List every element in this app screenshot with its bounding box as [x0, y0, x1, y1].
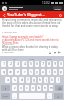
button[interactable]: 6 — [35, 61, 39, 67]
button[interactable]: n — [43, 85, 47, 91]
button[interactable]: 8 — [47, 61, 51, 67]
staticText: 5 — [30, 62, 32, 66]
staticText: 1 — [3, 62, 5, 66]
staticText: https://www.example.com/watch?v=abcdefg&… — [2, 36, 62, 45]
staticText: That — [29, 57, 35, 60]
staticText: 2 — [10, 62, 12, 66]
staticText: 0 — [60, 62, 62, 66]
button[interactable]: Reply — [58, 51, 61, 54]
button[interactable]: Play — [2, 6, 7, 11]
button[interactable]: u — [41, 69, 45, 75]
button[interactable]: j — [44, 77, 48, 83]
button[interactable]: z — [12, 85, 17, 91]
staticText: w — [9, 70, 12, 74]
staticText: l — [58, 78, 59, 82]
staticText: h — [39, 78, 41, 82]
button[interactable]: 4 — [22, 61, 27, 67]
button[interactable]: ?123 — [1, 93, 10, 99]
staticText: c — [26, 86, 28, 90]
button[interactable]: 1 — [1, 61, 6, 67]
staticText: z — [14, 86, 16, 90]
staticText: k — [51, 78, 53, 82]
staticText: 12:02 — [42, 1, 50, 5]
button[interactable]: h — [38, 77, 42, 83]
staticText: , — [14, 94, 15, 98]
staticText: t — [30, 70, 32, 74]
button[interactable]: e — [15, 69, 20, 75]
button[interactable]: ⌫ — [55, 85, 63, 91]
button[interactable]: w — [8, 69, 13, 75]
staticText: u — [42, 70, 44, 74]
staticText: What a great video thanks for sharing it… — [2, 46, 62, 52]
button[interactable]: 7 — [41, 61, 45, 67]
button[interactable]: 2 — [8, 61, 13, 67]
staticText: Please keep comments respectful and rele… — [2, 19, 62, 28]
button[interactable]: Back — [1, 12, 7, 18]
button[interactable]: o — [53, 69, 57, 75]
staticText: YouTube's Biggest... — [7, 12, 45, 17]
button[interactable]: g — [32, 77, 36, 83]
staticText: 8 — [48, 62, 50, 66]
button[interactable]: Like — [48, 51, 51, 54]
staticText: Listen — [54, 7, 62, 10]
button[interactable]: m — [49, 85, 53, 91]
staticText: 7 — [42, 62, 44, 66]
staticText: 6 — [36, 62, 38, 66]
button[interactable]: 5 — [29, 61, 33, 67]
staticText: m — [50, 86, 53, 90]
staticText: x — [20, 86, 22, 90]
staticText: 3 — [17, 62, 19, 66]
staticText: r — [24, 70, 26, 74]
staticText: p — [60, 70, 62, 74]
staticText: ⌫ — [57, 87, 62, 90]
button[interactable]: d — [19, 77, 24, 83]
button[interactable]: a — [5, 77, 10, 83]
staticText: q — [3, 70, 5, 74]
button[interactable]: r — [22, 69, 27, 75]
staticText: ↵ — [57, 95, 60, 98]
button[interactable]: Dislike — [53, 51, 56, 54]
staticText: ⇧ — [4, 87, 7, 90]
button[interactable]: 9 — [53, 61, 57, 67]
staticText: . — [49, 94, 50, 98]
button[interactable]: i — [47, 69, 51, 75]
button[interactable]: . — [47, 93, 52, 99]
button[interactable]: , — [12, 93, 17, 99]
button[interactable]: Listen — [53, 6, 62, 10]
button[interactable]: k — [50, 77, 54, 83]
button[interactable]: b — [37, 85, 41, 91]
staticText: d — [21, 78, 23, 82]
staticText: g — [33, 78, 35, 82]
button[interactable]: c — [25, 85, 29, 91]
staticText: s — [14, 78, 16, 82]
staticText: 3 days ago — [2, 51, 14, 54]
button[interactable]: ⇧ — [1, 85, 10, 91]
button[interactable]: q — [1, 69, 6, 75]
button[interactable]: s — [12, 77, 17, 83]
button[interactable]: ↵ — [54, 93, 63, 99]
button[interactable]: p — [59, 69, 63, 75]
staticText: n — [44, 86, 46, 90]
button[interactable]: l — [56, 77, 60, 83]
button[interactable]: 3 — [15, 61, 20, 67]
staticText: o — [54, 70, 56, 74]
staticText: The — [47, 57, 52, 60]
staticText: j — [46, 78, 47, 82]
staticText: 9 — [54, 62, 56, 66]
staticText: 7 months ago — [2, 31, 17, 34]
button[interactable]: x — [19, 85, 23, 91]
button[interactable]: y — [35, 69, 39, 75]
staticText: y — [36, 70, 38, 74]
staticText: f — [27, 78, 29, 82]
staticText: e — [17, 70, 19, 74]
button[interactable]: Search — [57, 12, 63, 18]
button[interactable]: t — [29, 69, 33, 75]
staticText: "T" — [13, 57, 17, 60]
button[interactable]: f — [26, 77, 30, 83]
button[interactable]: v — [31, 85, 35, 91]
staticText: i — [49, 70, 50, 74]
staticText: a — [7, 78, 9, 82]
staticText: ?123 — [3, 95, 8, 98]
button[interactable]: 0 — [59, 61, 63, 67]
